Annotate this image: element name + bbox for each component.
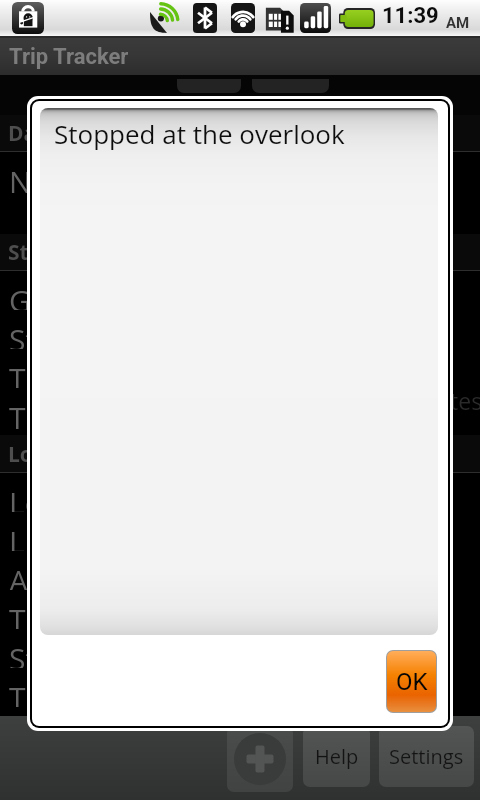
staticText: At the park — [9, 560, 164, 599]
staticText: AM — [446, 14, 470, 32]
button[interactable] — [0, 707, 480, 716]
staticText: Going 42 mph — [9, 280, 206, 319]
button[interactable]: Took a photo — [0, 668, 480, 707]
staticText: Took a photo — [9, 677, 194, 716]
button[interactable]: Trip time — [0, 388, 480, 435]
staticText: Travelled 12 mi — [9, 358, 222, 397]
button[interactable]: Travelled 12 mi — [0, 349, 480, 388]
staticText: Stopped — [9, 638, 127, 677]
button[interactable] — [252, 79, 329, 93]
button[interactable]: Settings — [379, 726, 474, 787]
staticText: Stats — [8, 238, 61, 267]
button[interactable]: At the park — [0, 551, 480, 590]
staticText: Settings — [389, 743, 464, 770]
button[interactable] — [177, 79, 241, 93]
staticText: Nov 8, 2011 — [9, 161, 174, 202]
staticText: Date — [8, 119, 58, 148]
button[interactable]: Stopped — [0, 629, 480, 668]
button[interactable]: Add — [227, 726, 293, 792]
button[interactable]: Turned around — [0, 590, 480, 629]
staticText: Help — [315, 743, 359, 770]
staticText: 1 hour and 24 minutes — [239, 385, 480, 416]
button[interactable]: OK — [387, 651, 436, 712]
staticText: Left home — [9, 482, 152, 521]
button[interactable]: Stopped 3 times — [0, 310, 480, 349]
staticText: Turned around — [9, 599, 220, 638]
staticText: 11:39 — [382, 3, 439, 29]
button[interactable]: Help — [303, 726, 370, 787]
staticText: Stopped 3 times — [9, 319, 237, 358]
button[interactable]: Left home — [0, 473, 480, 512]
staticText: OK — [396, 668, 428, 696]
button[interactable]: Nov 8, 2011 — [0, 152, 480, 234]
button[interactable]: Going 42 mph — [0, 271, 480, 310]
staticText: Stopped at the overlook — [54, 116, 345, 151]
staticText: Lunch break — [9, 521, 182, 560]
button[interactable]: Lunch break — [0, 512, 480, 551]
staticText: Trip time — [9, 397, 135, 438]
staticText: Trip Tracker — [9, 44, 129, 70]
staticText: Log — [8, 440, 45, 469]
